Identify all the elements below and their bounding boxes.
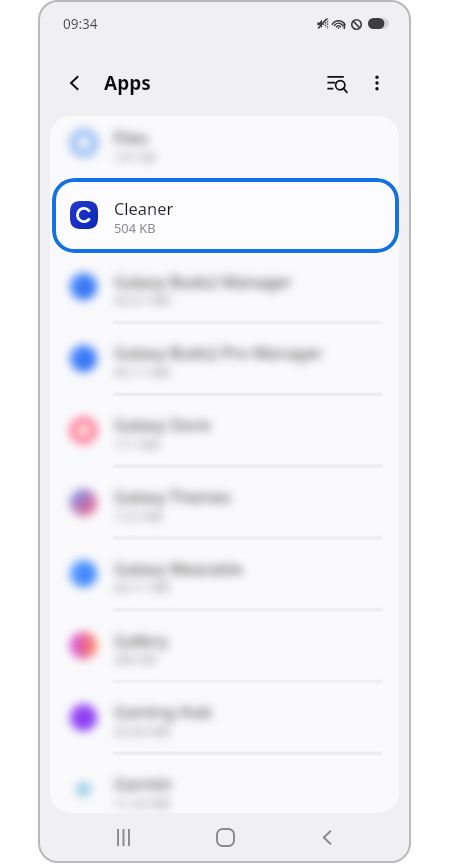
staticText: Galaxy Themes [114,485,231,507]
staticText: Files [114,126,149,148]
button[interactable]: Home [203,815,247,859]
button[interactable]: Navigate up [55,63,95,103]
staticText: 384 KB [114,650,156,667]
button[interactable]: More options [357,63,397,103]
staticText: Gallery [114,629,168,651]
staticText: 43.06 MB [114,722,170,739]
staticText: Galaxy Wearable [114,557,243,579]
staticText: 60.11 MB [114,578,170,595]
button[interactable]: Back [305,815,349,859]
staticText: Galaxy Buds2 Pro Manager [114,341,323,363]
staticText: 111 MB [114,435,160,452]
staticText: 11.26 MB [114,794,170,811]
staticText: Galaxy Store [114,413,211,435]
button[interactable]: Cleaner [52,178,399,253]
staticText: 7.22 MB [114,507,163,524]
button[interactable]: Recent apps [101,815,145,859]
staticText: Gaming Hub [114,700,212,722]
staticText: 141 KB [114,148,156,165]
staticText: Apps [104,70,151,96]
staticText: Cleaner [114,197,174,219]
staticText: Galaxy Buds2 Manager [114,270,292,292]
staticText: 09:34 [63,15,98,33]
staticText: 504 KB [114,219,156,236]
staticText: 46.11 MB [114,363,170,380]
staticText: Garmin [114,772,172,794]
button[interactable]: Search apps [317,63,357,103]
staticText: 44.41 MB [114,291,170,308]
